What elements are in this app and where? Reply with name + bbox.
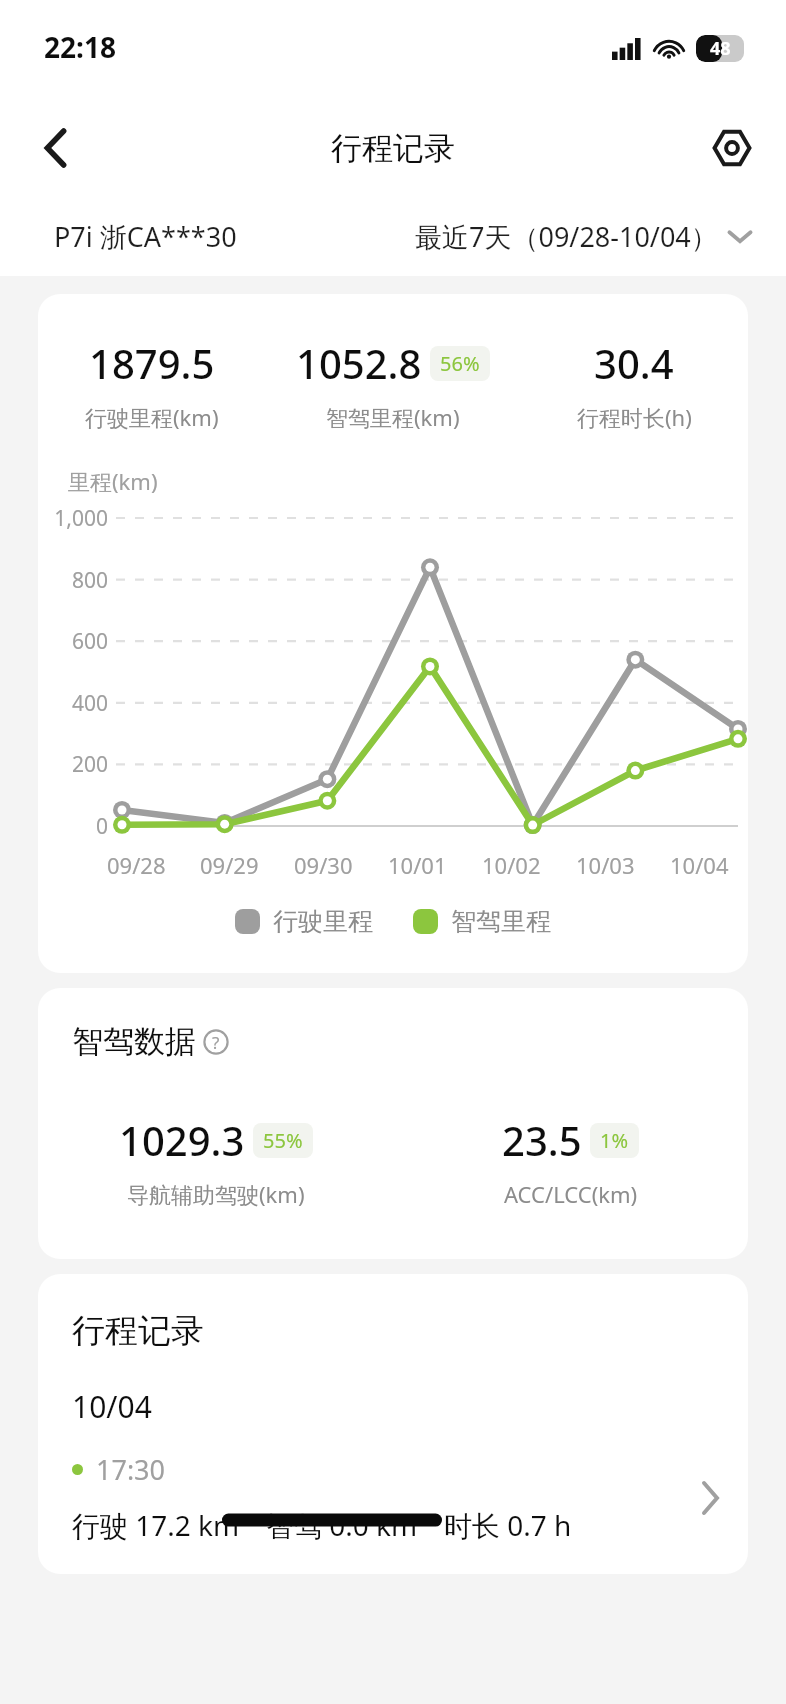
staticText: ACC/LCC(km) (504, 1179, 638, 1209)
staticText: 10/04 (72, 1386, 152, 1427)
staticText: 800 (71, 566, 108, 595)
staticText: 200 (71, 750, 108, 779)
staticText: ? (212, 1031, 220, 1054)
staticText: 17:30 (96, 1451, 166, 1488)
staticText: 55% (263, 1127, 303, 1154)
staticText: 09/30 (294, 850, 353, 880)
button[interactable]: Settings (702, 118, 762, 178)
staticText: 智驾里程 (451, 906, 551, 937)
staticText: 智驾 0.0 km (266, 1506, 418, 1544)
staticText: 行程记录 (331, 129, 455, 168)
staticText: 里程(km) (68, 466, 158, 496)
staticText: 48 (710, 36, 731, 61)
staticText: 智驾里程(km) (326, 402, 460, 432)
staticText: 10/03 (576, 850, 635, 880)
staticText: 1029.3 (119, 1113, 245, 1167)
staticText: 智驾数据 (72, 1022, 196, 1061)
staticText: 56% (440, 350, 480, 377)
staticText: 23.5 (502, 1113, 582, 1167)
staticText: 最近7天（09/28-10/04） (415, 218, 718, 255)
staticText: 行程记录 (72, 1310, 204, 1352)
staticText: 0 (95, 812, 108, 840)
staticText: 导航辅助驾驶(km) (127, 1179, 305, 1209)
button[interactable]: 17:30 (38, 1451, 748, 1544)
staticText: 时长 0.7 h (444, 1506, 572, 1544)
button[interactable]: Help (202, 1028, 230, 1056)
staticText: 行驶里程 (273, 906, 373, 937)
staticText: 09/29 (200, 850, 259, 880)
staticText: 09/28 (107, 850, 166, 880)
button[interactable]: Back (26, 118, 86, 178)
staticText: 10/01 (388, 850, 447, 880)
staticText: 30.4 (594, 336, 674, 390)
staticText: 1,000 (54, 504, 108, 533)
button[interactable]: 最近7天（09/28-10/04） (405, 218, 786, 255)
staticText: 行驶 17.2 km (72, 1506, 240, 1544)
staticText: 22:18 (44, 28, 116, 66)
staticText: 行驶里程(km) (85, 402, 219, 432)
staticText: 1879.5 (89, 336, 215, 390)
staticText: P7i 浙CA***30 (54, 218, 237, 255)
staticText: 10/02 (482, 850, 541, 880)
staticText: 10/04 (670, 850, 729, 880)
staticText: 600 (71, 627, 108, 656)
staticText: 1% (600, 1127, 629, 1154)
staticText: 行程时长(h) (577, 402, 692, 432)
staticText: 1052.8 (296, 336, 422, 390)
staticText: 400 (71, 689, 108, 718)
